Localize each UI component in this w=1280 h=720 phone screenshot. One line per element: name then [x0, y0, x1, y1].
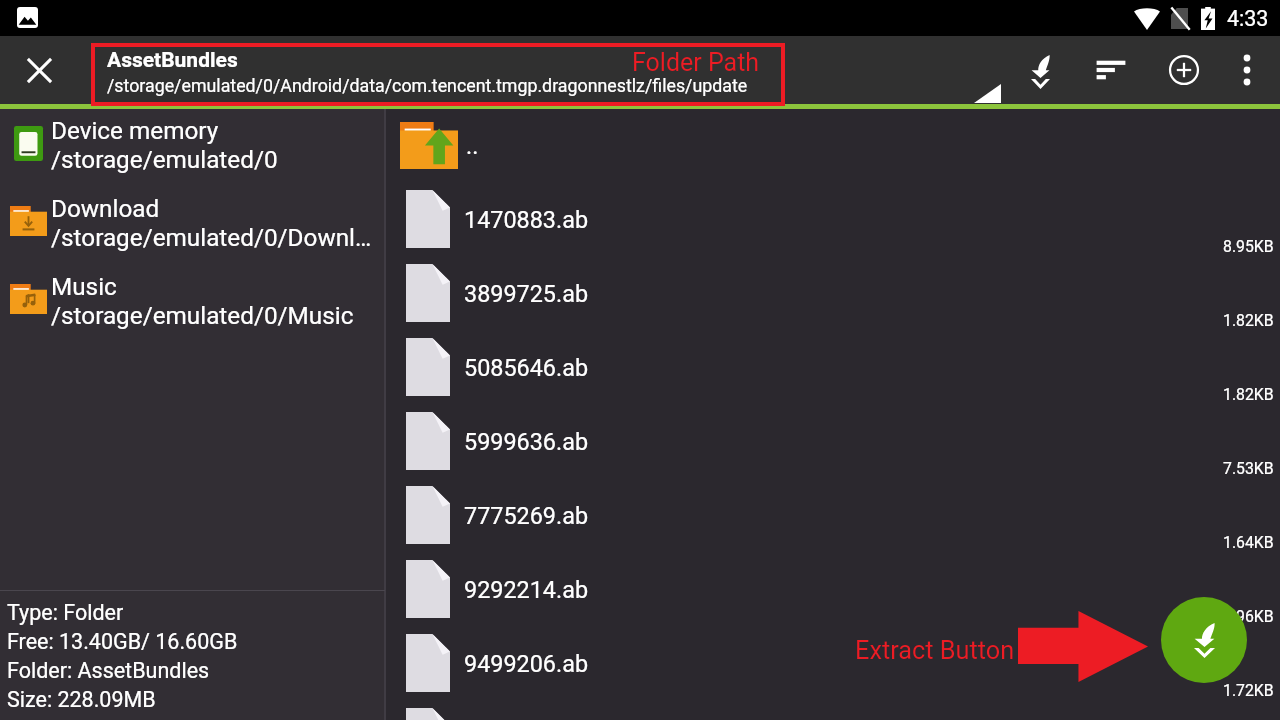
- staticText: 1.82KB: [1223, 311, 1274, 330]
- staticText: Device memory: [51, 116, 219, 144]
- button[interactable]: Close: [0, 36, 79, 104]
- staticText: 8.95KB: [1223, 237, 1274, 256]
- staticText: 1470883.ab: [464, 206, 589, 233]
- staticText: AssetBundles: [107, 48, 238, 73]
- staticText: Size: 228.09MB: [7, 687, 156, 712]
- staticText: ..: [466, 132, 479, 159]
- button[interactable]: 1470883.ab: [385, 182, 1280, 256]
- button[interactable]: 9499206.ab: [385, 626, 1280, 700]
- staticText: 1.82KB: [1223, 385, 1274, 404]
- button[interactable]: 3899725.ab: [385, 256, 1280, 330]
- staticText: 5999636.ab: [464, 428, 589, 455]
- button[interactable]: More options: [1210, 36, 1280, 104]
- staticText: Folder Path: [632, 48, 760, 77]
- staticText: 3899725.ab: [464, 280, 589, 307]
- staticText: Free: 13.40GB/ 16.60GB: [7, 629, 238, 654]
- button[interactable]: 7775269.ab: [385, 478, 1280, 552]
- staticText: Music: [51, 272, 117, 300]
- button[interactable]: Extract: [1161, 597, 1247, 683]
- staticText: 7775269.ab: [464, 502, 589, 529]
- staticText: /storage/emulated/0/Downl…: [51, 223, 372, 251]
- staticText: /storage/emulated/0/Music: [51, 301, 354, 329]
- staticText: 1.64KB: [1223, 533, 1274, 552]
- staticText: /storage/emulated/0: [51, 145, 278, 173]
- staticText: /storage/emulated/0/Android/data/com.ten…: [107, 75, 748, 96]
- button[interactable]: 5085646.ab: [385, 330, 1280, 404]
- staticText: 5085646.ab: [464, 354, 589, 381]
- button[interactable]: Add: [1147, 36, 1221, 104]
- button[interactable]: 9573551.ab: [385, 700, 1280, 720]
- staticText: 7.53KB: [1223, 459, 1274, 478]
- button[interactable]: Download: [0, 183, 385, 261]
- staticText: Folder: AssetBundles: [7, 658, 210, 683]
- button[interactable]: Sort: [1074, 36, 1148, 104]
- staticText: Type: Folder: [7, 600, 124, 625]
- button[interactable]: Extract: [1003, 39, 1077, 104]
- button[interactable]: Music: [0, 261, 385, 339]
- staticText: Extract Button: [855, 636, 1015, 666]
- staticText: 9292214.ab: [464, 576, 589, 603]
- staticText: 9499206.ab: [464, 650, 589, 677]
- staticText: 4:33: [1227, 6, 1269, 31]
- button[interactable]: ..: [385, 108, 1280, 182]
- button[interactable]: Device memory: [0, 105, 385, 183]
- staticText: 3.96KB: [1223, 607, 1274, 626]
- staticText: 1.72KB: [1223, 681, 1274, 700]
- button[interactable]: 9292214.ab: [385, 552, 1280, 626]
- staticText: Download: [51, 194, 160, 222]
- button[interactable]: 5999636.ab: [385, 404, 1280, 478]
